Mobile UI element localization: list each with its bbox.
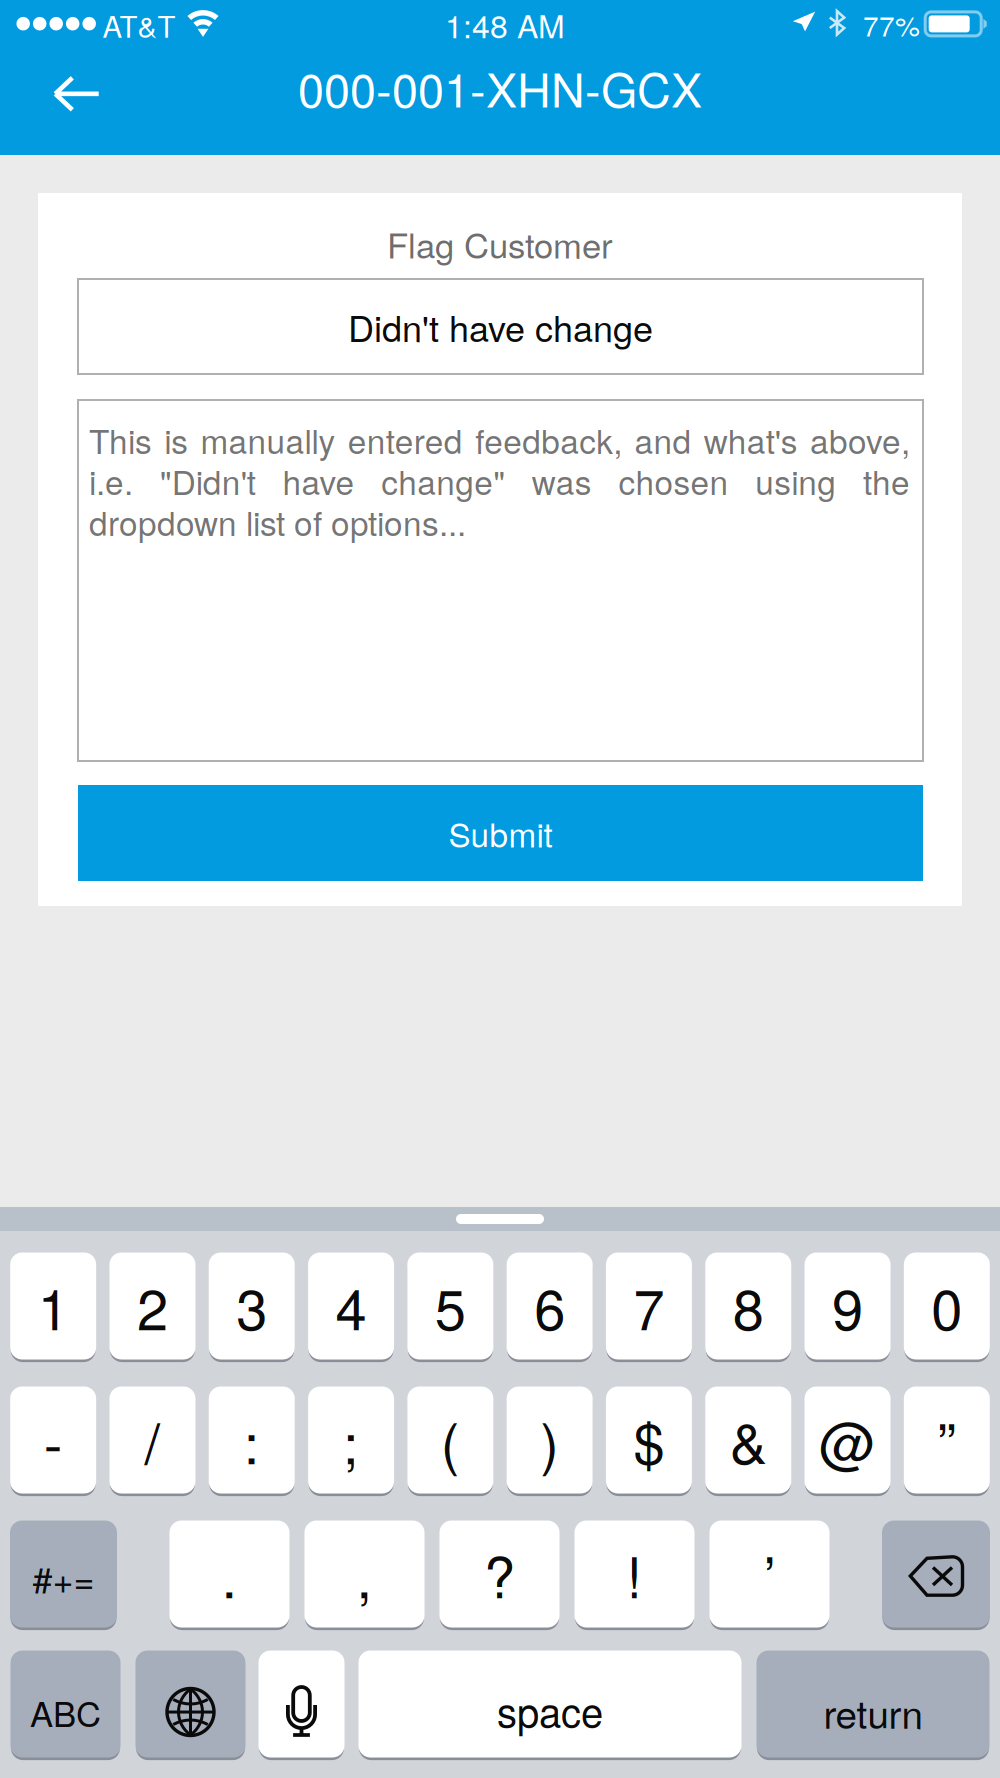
button[interactable]: .: [169, 1519, 289, 1629]
button[interactable]: 2: [109, 1251, 195, 1361]
staticText: 1:48 AM: [445, 2, 565, 47]
staticText: 0: [931, 1266, 962, 1346]
button[interactable]: Dictation: [258, 1649, 344, 1759]
staticText: .: [221, 1534, 237, 1614]
staticText: #+=: [32, 1552, 94, 1604]
button[interactable]: ): [507, 1385, 593, 1495]
button[interactable]: 0: [904, 1251, 990, 1361]
button[interactable]: Delete: [882, 1519, 990, 1629]
button[interactable]: space: [358, 1649, 741, 1759]
staticText: :: [244, 1400, 260, 1480]
staticText: 77%: [863, 4, 920, 45]
button[interactable]: ,: [304, 1519, 424, 1629]
button[interactable]: Next keyboard: [135, 1649, 245, 1759]
staticText: 4: [335, 1266, 366, 1346]
button[interactable]: Back: [21, 48, 133, 140]
staticText: "Didn't: [160, 457, 256, 504]
button[interactable]: ABC: [10, 1649, 120, 1759]
staticText: 000-001-XHN-GCX: [298, 54, 702, 121]
staticText: is: [164, 416, 188, 463]
button[interactable]: 3: [209, 1251, 295, 1361]
staticText: Submit: [448, 809, 552, 857]
staticText: ,: [356, 1534, 372, 1614]
staticText: 9: [832, 1266, 863, 1346]
staticText: (: [441, 1400, 460, 1480]
staticText: space: [497, 1681, 603, 1739]
staticText: dropdown list of options...: [89, 498, 466, 545]
staticText: @: [819, 1400, 876, 1480]
staticText: 3: [236, 1266, 267, 1346]
button[interactable]: -: [10, 1385, 96, 1495]
button[interactable]: $: [606, 1385, 692, 1495]
staticText: 7: [633, 1266, 664, 1346]
staticText: above,: [810, 416, 910, 463]
staticText: Flag Customer: [387, 219, 613, 268]
staticText: !: [626, 1534, 642, 1614]
staticText: -: [44, 1400, 63, 1480]
staticText: i.e.: [89, 457, 133, 504]
staticText: 1: [38, 1266, 69, 1346]
staticText: Didn't have change: [348, 301, 653, 352]
button[interactable]: (: [407, 1385, 493, 1495]
staticText: using: [755, 457, 836, 504]
staticText: &: [730, 1400, 767, 1480]
staticText: 2: [137, 1266, 168, 1346]
staticText: have: [282, 457, 354, 504]
button[interactable]: 5: [407, 1251, 493, 1361]
staticText: ?: [484, 1534, 515, 1614]
staticText: /: [144, 1400, 160, 1480]
staticText: AT&T: [102, 4, 175, 46]
staticText: return: [823, 1684, 922, 1740]
staticText: what's: [704, 416, 798, 463]
staticText: chosen: [619, 457, 729, 504]
button[interactable]: !: [574, 1519, 694, 1629]
button[interactable]: &: [705, 1385, 791, 1495]
button[interactable]: ”: [904, 1385, 990, 1495]
button[interactable]: 1: [10, 1251, 96, 1361]
button[interactable]: ’: [709, 1519, 829, 1629]
button[interactable]: ;: [308, 1385, 394, 1495]
staticText: 5: [435, 1266, 466, 1346]
button[interactable]: @: [804, 1385, 890, 1495]
button[interactable]: 9: [804, 1251, 890, 1361]
button[interactable]: 6: [507, 1251, 593, 1361]
button[interactable]: #+=: [10, 1519, 117, 1629]
staticText: 6: [534, 1266, 565, 1346]
staticText: 8: [733, 1266, 764, 1346]
button[interactable]: Didn't have change: [78, 279, 923, 374]
staticText: change": [381, 457, 505, 504]
staticText: This: [89, 416, 152, 463]
button[interactable]: /: [109, 1385, 195, 1495]
button[interactable]: return: [756, 1649, 989, 1759]
staticText: was: [532, 457, 592, 504]
staticText: and: [634, 416, 691, 463]
button[interactable]: ?: [439, 1519, 559, 1629]
button[interactable]: 7: [606, 1251, 692, 1361]
staticText: feedback,: [475, 416, 622, 463]
button[interactable]: 8: [705, 1251, 791, 1361]
staticText: ): [540, 1400, 559, 1480]
staticText: $: [633, 1400, 664, 1480]
button[interactable]: 4: [308, 1251, 394, 1361]
staticText: ’: [763, 1534, 775, 1614]
button[interactable]: :: [209, 1385, 295, 1495]
staticText: ABC: [30, 1687, 101, 1737]
staticText: ”: [937, 1400, 956, 1480]
staticText: manually: [201, 416, 336, 463]
staticText: ;: [343, 1400, 359, 1480]
staticText: entered: [348, 416, 463, 463]
button[interactable]: Submit: [78, 785, 923, 881]
staticText: the: [863, 457, 910, 504]
